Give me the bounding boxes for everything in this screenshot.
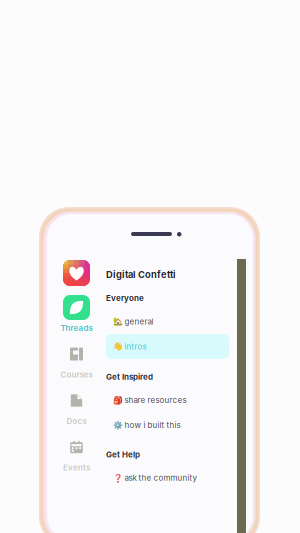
staticText: Digital Confetti <box>106 269 176 280</box>
button[interactable]: 🏡 <box>106 309 229 334</box>
staticText: Docs <box>66 416 86 426</box>
button[interactable]: 🎒 <box>106 388 229 413</box>
button[interactable]: Docs <box>50 388 102 426</box>
button[interactable]: Events <box>50 434 102 472</box>
staticText: intros <box>124 342 146 351</box>
staticText: Threads <box>60 323 92 333</box>
staticText: Get Inspired <box>106 372 153 382</box>
staticText: Get Help <box>106 450 140 459</box>
button[interactable]: Digital Confetti workspace <box>50 260 102 286</box>
button[interactable]: Threads <box>50 295 102 333</box>
staticText: 👋 <box>112 342 122 351</box>
staticText: Events <box>63 463 90 472</box>
staticText: ⚙️ <box>112 420 122 430</box>
staticText: share resources <box>124 395 186 405</box>
button[interactable]: 👋 <box>106 334 229 359</box>
staticText: Everyone <box>106 293 144 303</box>
staticText: Courses <box>60 370 92 379</box>
staticText: 🎒 <box>112 395 122 405</box>
button[interactable]: ⚙️ <box>106 413 229 438</box>
button[interactable]: Courses <box>50 341 102 379</box>
staticText: 🏡 <box>112 317 122 326</box>
button[interactable]: ❓ <box>106 465 229 490</box>
staticText: ❓ <box>112 473 122 482</box>
staticText: ask the community <box>124 473 196 483</box>
staticText: how i built this <box>124 420 180 430</box>
staticText: general <box>124 317 153 326</box>
